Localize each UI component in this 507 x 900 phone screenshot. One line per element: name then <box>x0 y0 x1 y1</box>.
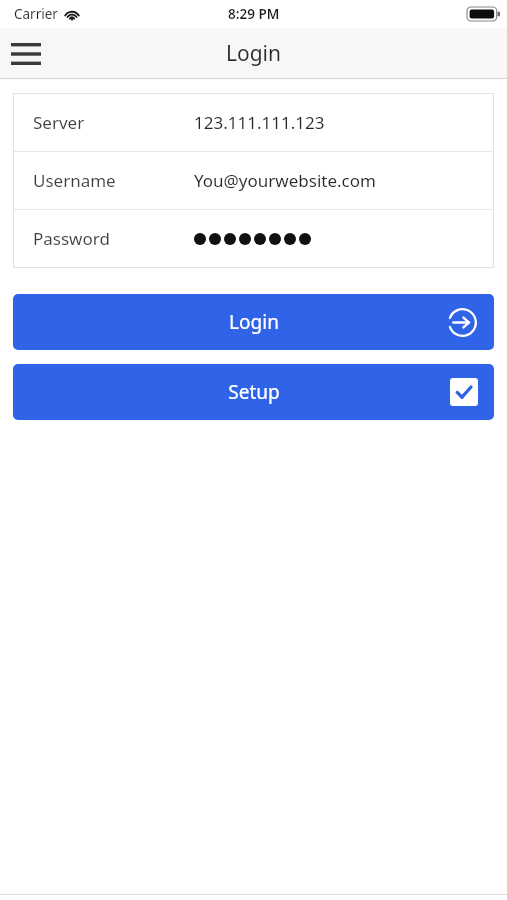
staticText: Setup <box>228 379 280 405</box>
staticText: Server <box>33 111 194 134</box>
other: Setup enabled <box>450 378 478 406</box>
button[interactable]: Open navigation menu <box>4 32 48 76</box>
staticText: Carrier <box>14 5 58 23</box>
staticText: 123.111.111.123 <box>194 111 325 134</box>
staticText: Login <box>226 39 282 68</box>
button[interactable]: Server <box>13 94 494 151</box>
button[interactable]: Username <box>13 152 494 209</box>
staticText: 8:29 PM <box>228 5 280 23</box>
staticText: Password <box>33 227 194 250</box>
button[interactable]: Login <box>13 294 494 350</box>
button[interactable]: Password <box>13 210 494 267</box>
staticText: Login <box>229 309 279 335</box>
staticText: Username <box>33 169 194 192</box>
staticText: You@yourwebsite.com <box>194 169 376 192</box>
button[interactable]: Setup <box>13 364 494 420</box>
other: Login <box>447 307 478 338</box>
